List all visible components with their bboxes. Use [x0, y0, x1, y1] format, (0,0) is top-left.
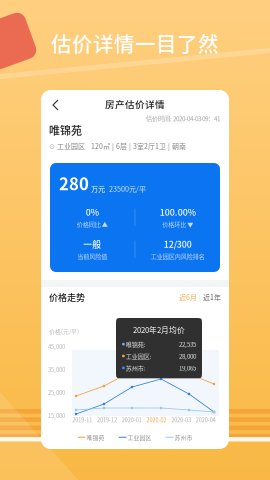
- staticText: 22,535: [179, 340, 196, 349]
- staticText: 2020-04: [196, 416, 216, 424]
- staticText: 120㎡ | 6层 | 3室2厅1卫 | 朝南: [85, 141, 186, 151]
- staticText: 价格走势: [49, 290, 85, 303]
- button[interactable]: 近6月: [179, 292, 197, 302]
- staticText: 工业园区内风险排名: [151, 252, 205, 261]
- staticText: 2019-11: [72, 416, 92, 424]
- button[interactable]: 近1年: [203, 292, 221, 302]
- staticText: 工业园区: [55, 141, 85, 151]
- staticText: 2019-12: [97, 416, 117, 424]
- staticText: 2020-01: [122, 416, 142, 424]
- staticText: 25,000: [48, 388, 65, 397]
- staticText: 100.00%: [160, 205, 196, 218]
- staticText: 近6月: [179, 292, 197, 302]
- staticText: 近1年: [203, 292, 221, 302]
- staticText: 12/300: [164, 237, 192, 250]
- staticText: ⊙: [49, 142, 55, 150]
- staticText: 280: [59, 171, 89, 195]
- staticText: 万元: [89, 183, 105, 194]
- staticText: 房产估价详情: [105, 97, 165, 111]
- button[interactable]: Back: [45, 90, 67, 118]
- staticText: 35,000: [48, 365, 65, 374]
- staticText: 45,000: [48, 342, 65, 351]
- staticText: 苏州市:: [125, 363, 146, 372]
- staticText: 当前风险值: [77, 252, 107, 261]
- staticText: 估价详情一目了然: [51, 28, 219, 58]
- staticText: 苏州市: [173, 433, 192, 441]
- staticText: |: [197, 293, 203, 301]
- staticText: 价格环比 ▼: [162, 220, 193, 229]
- staticText: 28,000: [179, 352, 196, 360]
- staticText: 19,065: [179, 363, 196, 372]
- staticText: 2020年2月均价: [133, 324, 185, 335]
- staticText: 估价时间: 2020-04-03 09：41: [146, 114, 220, 123]
- staticText: 23500元/平: [105, 183, 146, 194]
- staticText: 价格同比 ▲: [77, 220, 108, 229]
- staticText: 15,000: [48, 411, 65, 420]
- staticText: 一般: [83, 237, 101, 250]
- staticText: 工业园区:: [125, 352, 152, 360]
- staticText: 2020-02: [146, 416, 166, 424]
- staticText: 唯锦苑: [85, 433, 104, 441]
- staticText: 工业园区: [126, 433, 151, 441]
- staticText: 唯锦苑: [49, 122, 82, 138]
- staticText: 0%: [86, 205, 99, 218]
- staticText: 2020-03: [171, 416, 191, 424]
- staticText: 价格(元/平): [49, 327, 79, 335]
- staticText: 唯锦苑:: [125, 340, 146, 349]
